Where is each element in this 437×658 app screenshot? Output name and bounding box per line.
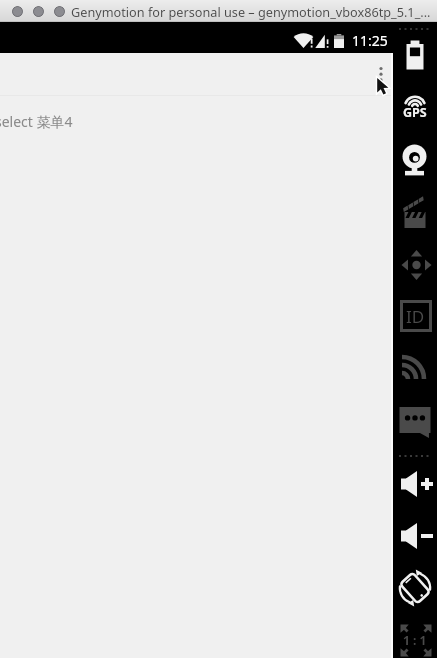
staticText: 1 : 1 xyxy=(403,632,427,648)
button[interactable]: Network xyxy=(393,352,437,380)
staticText: select 菜单4 xyxy=(0,112,73,131)
button[interactable]: More options xyxy=(369,53,393,95)
button[interactable]: Rotate xyxy=(393,571,437,605)
button[interactable]: Volume up xyxy=(393,470,437,498)
button[interactable]: SMS xyxy=(393,404,437,438)
button[interactable]: Volume down xyxy=(393,522,437,550)
button[interactable]: Camera xyxy=(393,142,437,178)
button[interactable]: Window control xyxy=(33,6,44,17)
button[interactable]: Scale 1 to 1 xyxy=(393,622,437,658)
button[interactable]: Identifiers xyxy=(393,300,437,332)
button[interactable]: Window control xyxy=(12,6,23,17)
button[interactable]: Window control xyxy=(54,6,65,17)
button[interactable]: Battery xyxy=(393,40,437,70)
staticText: GPS xyxy=(403,104,427,121)
button[interactable]: Accelerometer xyxy=(393,249,437,281)
button[interactable]: GPS xyxy=(393,93,437,125)
button[interactable]: Video recording xyxy=(393,197,437,229)
staticText: 11:25 xyxy=(352,31,388,50)
staticText: ID xyxy=(406,305,425,328)
staticText: Genymotion for personal use – genymotion… xyxy=(71,3,431,20)
